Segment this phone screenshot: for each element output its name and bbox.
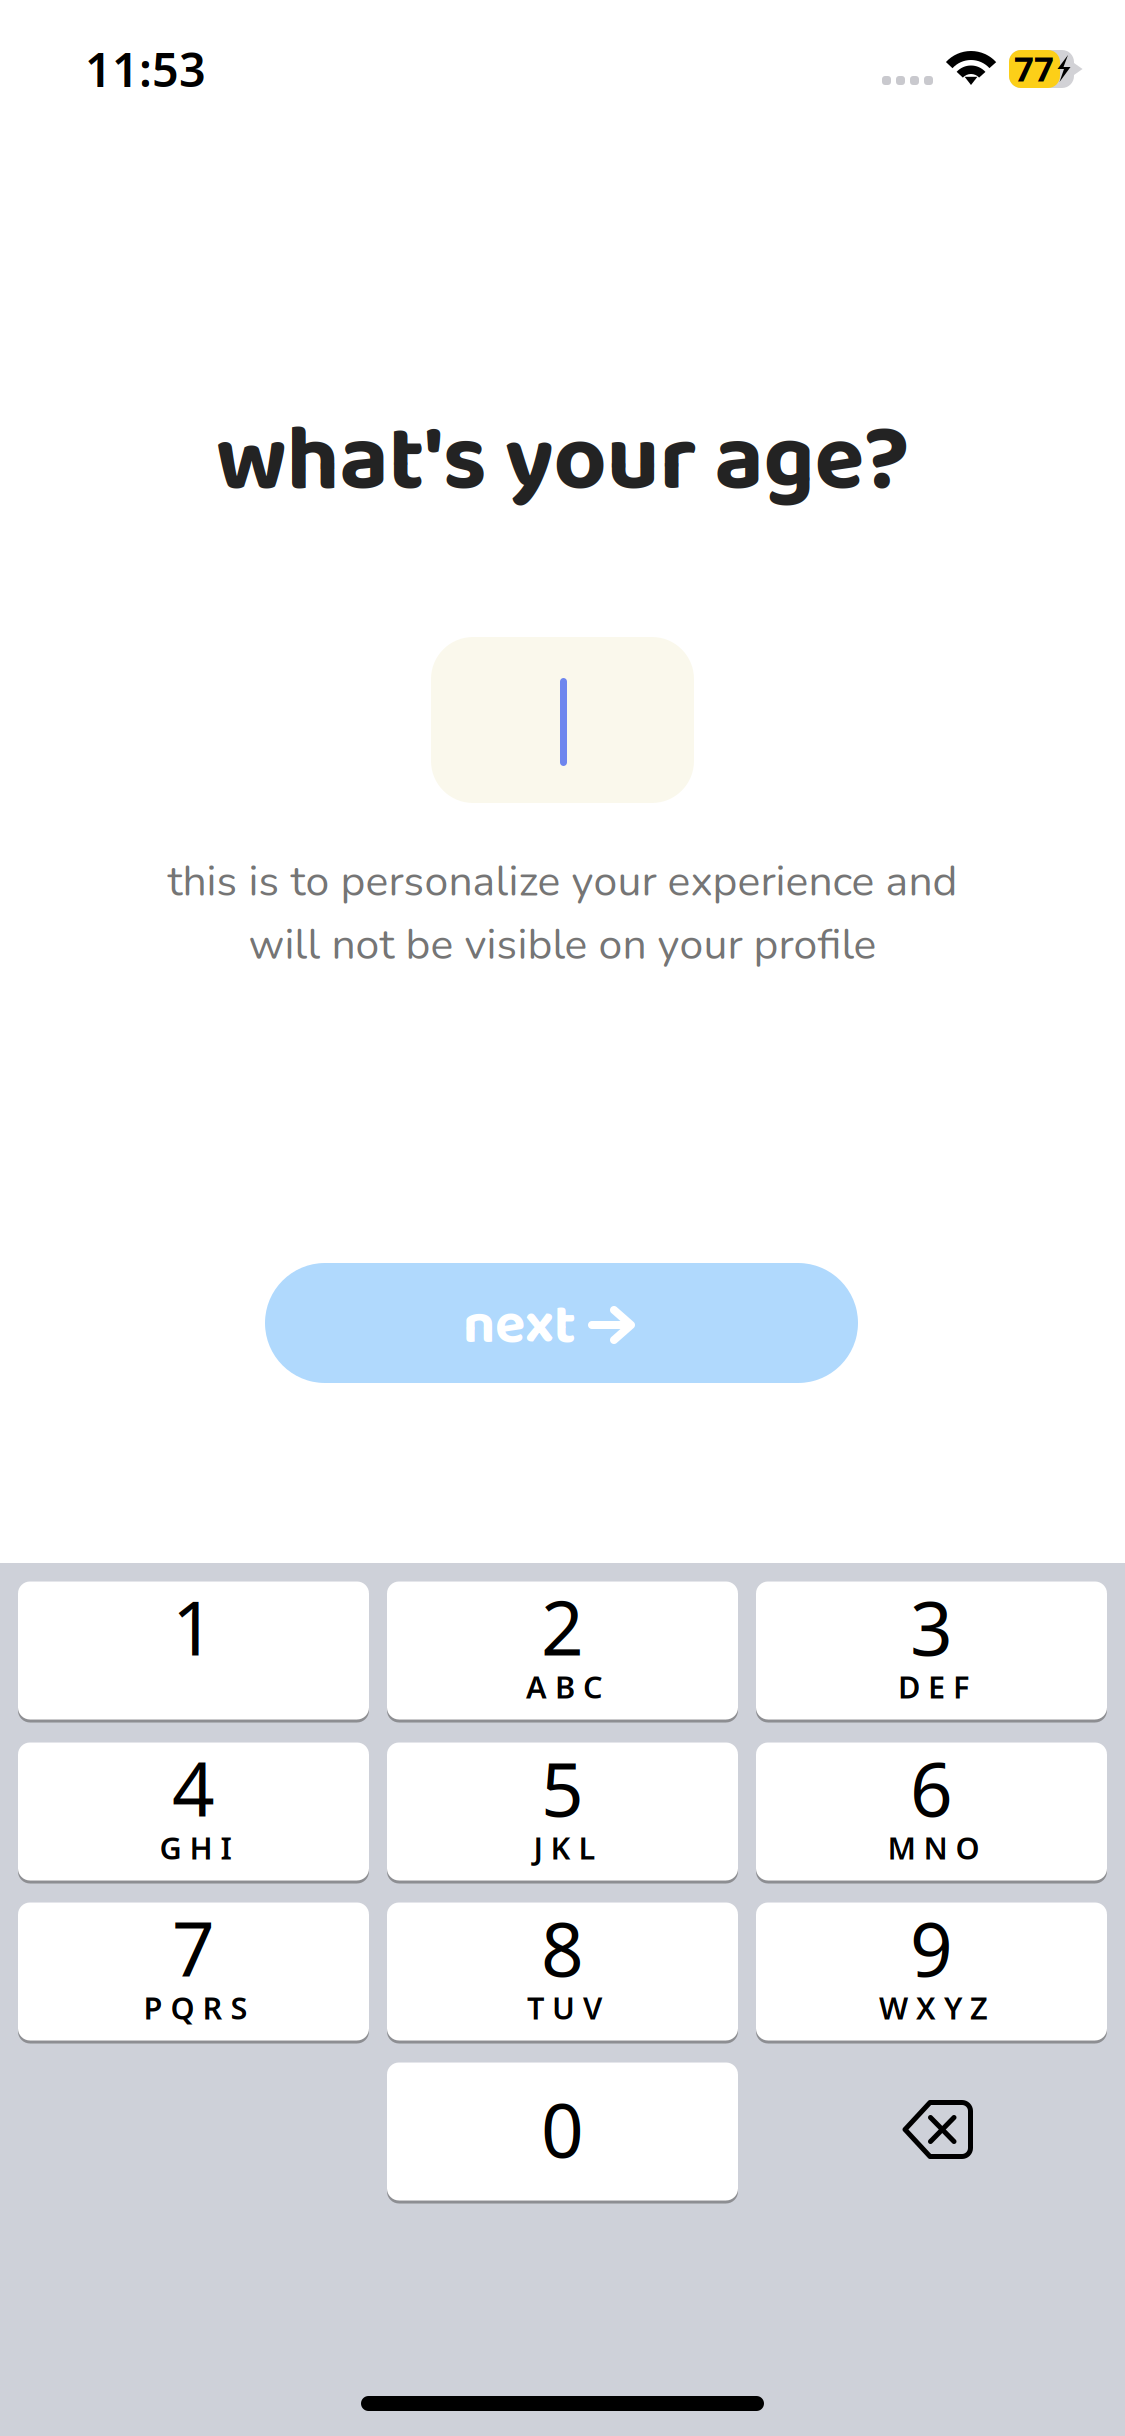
button[interactable]: Delete (756, 2061, 1107, 2202)
staticText: PQRS (143, 1987, 247, 2028)
staticText: will not be visible on your profile (248, 915, 876, 974)
staticText: DEF (898, 1666, 969, 1707)
button[interactable]: 6 (756, 1741, 1107, 1882)
staticText: 1 (172, 1577, 215, 1676)
staticText: MNO (887, 1827, 979, 1868)
staticText: this is to personalize your experience a… (167, 852, 957, 910)
button[interactable]: 5 (387, 1741, 738, 1882)
button[interactable]: 4 (18, 1741, 369, 1882)
staticText: next (463, 1281, 576, 1371)
button[interactable]: 0 (387, 2061, 738, 2202)
staticText: 4 (172, 1738, 215, 1837)
staticText: 5 (541, 1738, 584, 1837)
staticText: 7 (172, 1898, 215, 1997)
button[interactable]: 7 (18, 1901, 369, 2042)
staticText: 8 (541, 1898, 584, 1997)
button[interactable]: 8 (387, 1901, 738, 2042)
staticText: ABC (526, 1666, 603, 1707)
staticText: 11:53 (85, 38, 206, 100)
staticText: 0 (541, 2079, 584, 2178)
button[interactable]: next (265, 1263, 858, 1383)
staticText: 3 (910, 1577, 953, 1676)
staticText: what's your age? (215, 388, 909, 536)
button[interactable]: 9 (756, 1901, 1107, 2042)
staticText: 6 (910, 1738, 953, 1837)
button[interactable]: 1 (18, 1580, 369, 1721)
button[interactable]: 3 (756, 1580, 1107, 1721)
staticText: WXYZ (879, 1987, 988, 2028)
staticText: 77 (1014, 45, 1054, 91)
staticText: 9 (910, 1898, 953, 1997)
staticText: GHI (159, 1827, 231, 1868)
staticText: 2 (541, 1577, 584, 1676)
button[interactable]: 2 (387, 1580, 738, 1721)
staticText: JKL (533, 1827, 595, 1868)
staticText: TUV (527, 1987, 602, 2028)
